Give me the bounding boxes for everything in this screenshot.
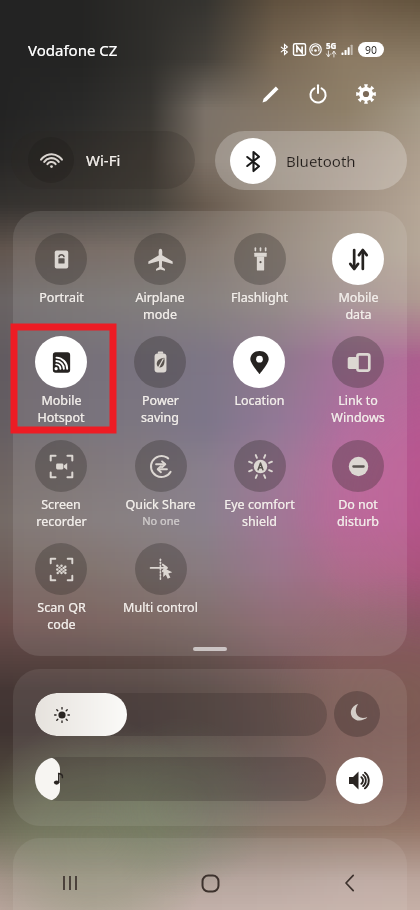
staticText: Multi control xyxy=(123,599,198,616)
button[interactable]: Multi control xyxy=(111,537,209,633)
staticText: Link to xyxy=(338,392,378,409)
staticText: Quick Share xyxy=(125,496,196,513)
staticText: Mobile xyxy=(338,289,379,306)
button[interactable]: Bluetooth xyxy=(215,131,407,190)
button[interactable]: Scan QR xyxy=(12,537,110,633)
staticText: shield xyxy=(242,513,277,530)
button[interactable] xyxy=(35,757,326,801)
staticText: Airplane xyxy=(135,289,185,306)
button[interactable]: Airplane xyxy=(111,227,209,323)
button[interactable]: Screen xyxy=(12,434,110,530)
button[interactable]: Flashlight xyxy=(210,227,308,323)
button[interactable]: Volume xyxy=(336,757,383,804)
button[interactable] xyxy=(35,693,327,736)
staticText: Wi-Fi xyxy=(86,150,121,170)
staticText: code xyxy=(47,616,76,633)
staticText: saving xyxy=(141,409,179,426)
staticText: Bluetooth xyxy=(286,151,356,171)
button[interactable]: Dark mode xyxy=(334,691,380,737)
staticText: Mobile xyxy=(41,392,82,409)
staticText: mode xyxy=(143,306,177,323)
button[interactable]: Power xyxy=(111,330,209,426)
button[interactable]: Recents xyxy=(0,858,140,908)
button[interactable]: Back xyxy=(280,858,420,908)
button[interactable]: Wi-Fi xyxy=(11,131,195,189)
button[interactable]: Power xyxy=(296,72,340,116)
staticText: Power xyxy=(142,392,179,409)
staticText: Screen xyxy=(41,496,81,513)
button[interactable]: Link to xyxy=(309,330,407,426)
staticText: Flashlight xyxy=(231,289,288,306)
button[interactable]: Portrait xyxy=(12,227,110,323)
button[interactable]: Mobile xyxy=(309,227,407,323)
button[interactable]: Settings xyxy=(344,72,388,116)
staticText: recorder xyxy=(36,513,87,530)
button[interactable]: Do not xyxy=(309,434,407,530)
staticText: Eye comfort xyxy=(224,496,295,513)
button[interactable]: Location xyxy=(210,330,308,426)
staticText: Hotspot xyxy=(37,409,85,426)
button[interactable]: Edit xyxy=(248,72,292,116)
staticText: 5G xyxy=(326,40,337,51)
staticText: No one xyxy=(142,513,180,528)
button[interactable]: Quick Share xyxy=(111,434,209,530)
button[interactable]: Eye comfort xyxy=(210,434,308,530)
staticText: Location xyxy=(234,392,285,409)
button[interactable]: Mobile xyxy=(12,330,110,426)
staticText: Portrait xyxy=(39,289,84,306)
staticText: data xyxy=(345,306,372,323)
button[interactable]: Home xyxy=(140,858,280,908)
staticText: Windows xyxy=(331,409,385,426)
staticText: Scan QR xyxy=(37,599,86,616)
staticText: Vodafone CZ xyxy=(28,40,118,60)
staticText: disturb xyxy=(337,513,379,530)
staticText: Do not xyxy=(338,496,378,513)
staticText: 90 xyxy=(365,43,378,57)
